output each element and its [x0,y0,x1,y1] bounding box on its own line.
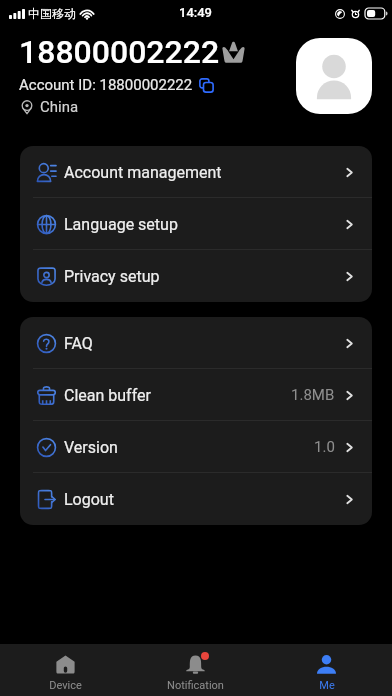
staticText: Me [319,679,335,692]
button[interactable]: Language setup [20,198,372,250]
button[interactable]: Notification [130,644,261,696]
button[interactable]: Profile avatar [296,38,372,114]
staticText: Language setup [64,215,178,234]
staticText: 1.8MB [291,386,335,404]
staticText: Version [64,438,118,457]
button[interactable]: Clean buffer [20,369,372,421]
staticText: Logout [64,490,114,509]
button[interactable]: Logout [20,473,372,525]
staticText: FAQ [64,334,93,353]
staticText: 14:49 [179,5,213,20]
staticText: Privacy setup [64,267,160,286]
button[interactable]: Copy account ID [199,78,214,93]
button[interactable]: FAQ [20,317,372,369]
staticText: Account ID: 18800002222 [19,76,193,94]
staticText: 18800002222 [19,33,220,71]
staticText: 中国移动 [28,6,76,21]
button[interactable]: Account management [20,146,372,198]
button[interactable]: Privacy setup [20,250,372,302]
button[interactable]: Me [261,644,392,696]
staticText: 1.0 [314,438,335,456]
staticText: Device [49,679,82,692]
button[interactable]: Version [20,421,372,473]
staticText: Notification [167,679,224,692]
button[interactable]: Device [0,644,130,696]
staticText: Account management [64,163,222,182]
staticText: Clean buffer [64,386,151,405]
staticText: China [40,98,79,116]
